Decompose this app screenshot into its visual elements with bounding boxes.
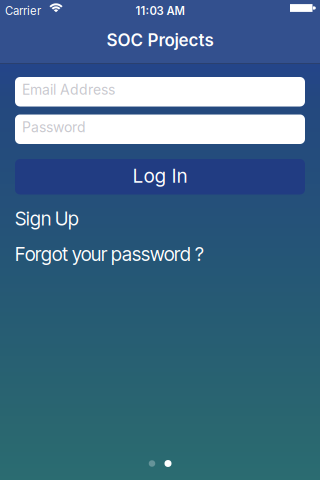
button[interactable]: Password [15, 114, 305, 144]
button[interactable]: Email Address [15, 77, 305, 106]
button[interactable]: Page 1 [148, 460, 155, 467]
staticText: Carrier [5, 4, 41, 18]
staticText: Forgot your password ? [15, 243, 204, 265]
button[interactable]: Sign Up [15, 207, 79, 230]
button[interactable]: Log In [15, 159, 305, 194]
staticText: SOC Projects [106, 30, 213, 50]
staticText: Log In [132, 164, 187, 187]
button[interactable]: Page 2 [164, 460, 171, 467]
staticText: Password [22, 119, 86, 135]
button[interactable]: Forgot your password ? [15, 243, 204, 265]
staticText: Sign Up [15, 207, 79, 230]
staticText: Email Address [22, 81, 115, 98]
staticText: 11:03 AM [135, 4, 184, 18]
